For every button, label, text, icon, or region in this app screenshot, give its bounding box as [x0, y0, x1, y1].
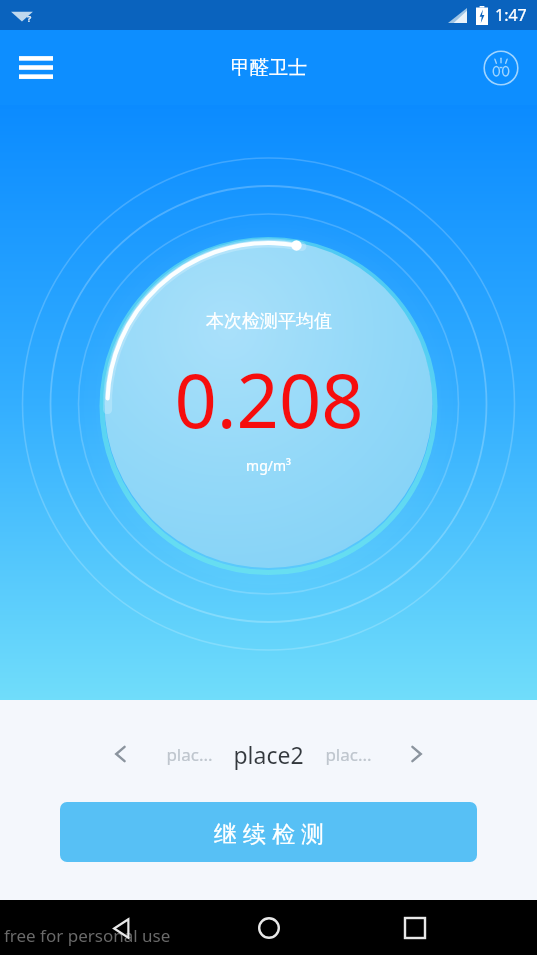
staticText: free for personal use	[4, 924, 171, 947]
staticText: plac...	[166, 743, 213, 766]
button[interactable]: Previous place	[99, 732, 143, 776]
button[interactable]: Back	[98, 904, 146, 952]
button[interactable]: Next place	[394, 732, 438, 776]
button[interactable]: Home	[245, 904, 293, 952]
button[interactable]: place2	[233, 739, 304, 770]
button[interactable]: plac...	[153, 743, 225, 766]
staticText: plac...	[325, 743, 372, 766]
staticText: 甲醛卫士	[231, 56, 307, 80]
staticText: 继 续 检 测	[214, 817, 324, 848]
staticText: place2	[233, 739, 304, 770]
staticText: ?	[27, 12, 32, 24]
button[interactable]: Recents	[391, 904, 439, 952]
staticText: mg/m³	[246, 456, 291, 475]
staticText: 1:47	[495, 4, 527, 26]
button[interactable]: Detector	[477, 44, 525, 92]
staticText: 本次检测平均值	[206, 310, 332, 333]
staticText: 0.208	[174, 349, 364, 450]
button[interactable]: plac...	[312, 743, 384, 766]
button[interactable]: Menu	[12, 44, 60, 92]
button[interactable]: 继 续 检 测	[60, 802, 477, 862]
